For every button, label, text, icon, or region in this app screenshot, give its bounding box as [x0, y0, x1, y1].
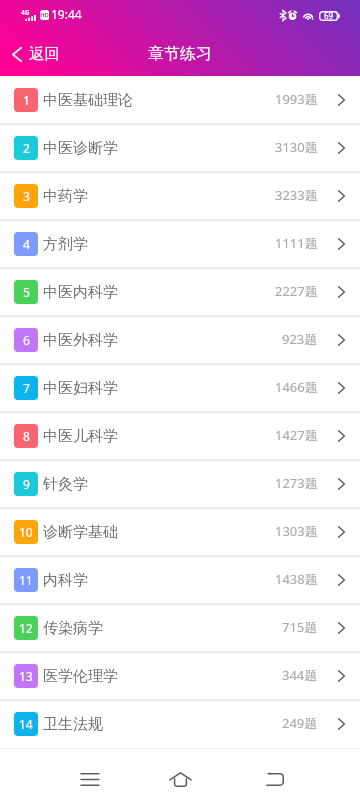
staticText: 9 [23, 476, 30, 492]
staticText: 2 [23, 140, 30, 156]
button[interactable]: Home [147, 758, 213, 800]
button[interactable]: 2 [0, 124, 360, 172]
staticText: 4 [23, 236, 30, 252]
staticText: 返回 [29, 44, 60, 64]
staticText: 中医内科学 [43, 283, 118, 302]
button[interactable]: 14 [0, 700, 360, 748]
button[interactable]: 12 [0, 604, 360, 652]
button[interactable]: 11 [0, 556, 360, 604]
staticText: 7 [23, 380, 30, 396]
staticText: 3130题 [275, 138, 318, 156]
button[interactable]: 6 [0, 316, 360, 364]
staticText: 中医诊断学 [43, 139, 118, 158]
staticText: HD [40, 11, 49, 19]
staticText: 344题 [282, 666, 318, 684]
staticText: 6 [23, 332, 30, 348]
staticText: 3233题 [275, 186, 318, 204]
staticText: 69 [324, 10, 334, 21]
staticText: 中药学 [43, 187, 88, 206]
staticText: 中医妇科学 [43, 379, 118, 398]
button[interactable]: Back [242, 758, 308, 800]
staticText: 卫生法规 [43, 715, 103, 734]
staticText: 923题 [282, 330, 318, 348]
staticText: 中医外科学 [43, 331, 118, 350]
staticText: 249题 [282, 714, 318, 732]
staticText: 1466题 [275, 378, 318, 396]
staticText: 4G [21, 8, 30, 17]
staticText: 1111题 [275, 234, 318, 252]
button[interactable]: 3 [0, 172, 360, 220]
button[interactable]: 5 [0, 268, 360, 316]
staticText: 13 [19, 668, 33, 684]
button[interactable]: 9 [0, 460, 360, 508]
staticText: 内科学 [43, 571, 88, 590]
staticText: 医学伦理学 [43, 667, 118, 686]
staticText: 中医基础理论 [43, 91, 133, 110]
staticText: 章节练习 [148, 44, 212, 64]
staticText: 1303题 [275, 522, 318, 540]
staticText: 1 [23, 92, 30, 108]
staticText: 传染病学 [43, 619, 103, 638]
button[interactable]: 7 [0, 364, 360, 412]
staticText: 2227题 [275, 282, 318, 300]
button[interactable]: 8 [0, 412, 360, 460]
staticText: 1438题 [275, 570, 318, 588]
button[interactable]: 1 [0, 76, 360, 124]
staticText: 中医儿科学 [43, 427, 118, 446]
button[interactable]: 返回 [0, 30, 74, 76]
staticText: 针灸学 [43, 475, 88, 494]
staticText: 5 [23, 284, 30, 300]
staticText: 1993题 [275, 90, 318, 108]
button[interactable]: Recent apps [57, 758, 123, 800]
button[interactable]: 4 [0, 220, 360, 268]
staticText: 12 [19, 620, 33, 636]
staticText: 3 [23, 188, 30, 204]
staticText: 715题 [282, 618, 318, 636]
staticText: 11 [19, 572, 33, 588]
staticText: 8 [23, 428, 30, 444]
staticText: 10 [19, 524, 33, 540]
staticText: 方剂学 [43, 235, 88, 254]
staticText: 诊断学基础 [43, 523, 118, 542]
staticText: 1273题 [275, 474, 318, 492]
button[interactable]: 13 [0, 652, 360, 700]
button[interactable]: 10 [0, 508, 360, 556]
staticText: 19:44 [51, 6, 82, 22]
staticText: 1427题 [275, 426, 318, 444]
staticText: 14 [19, 716, 33, 732]
